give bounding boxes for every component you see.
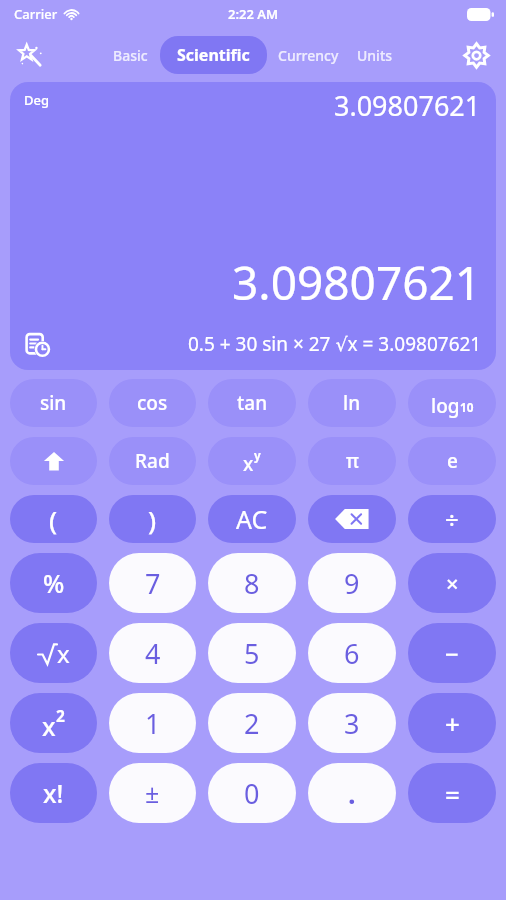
- button[interactable]: ±: [109, 763, 196, 823]
- staticText: 0: [244, 775, 260, 812]
- staticText: 6: [344, 635, 360, 672]
- button[interactable]: Basic: [105, 38, 156, 73]
- button[interactable]: 3: [308, 693, 396, 753]
- staticText: 7: [145, 565, 161, 602]
- button[interactable]: 0: [208, 763, 296, 823]
- staticText: ): [148, 502, 157, 537]
- button[interactable]: Settings: [454, 33, 498, 77]
- staticText: 2: [244, 705, 260, 742]
- button[interactable]: tan: [208, 379, 296, 427]
- button[interactable]: x: [10, 693, 97, 753]
- button[interactable]: .: [308, 763, 396, 823]
- staticText: ±: [145, 776, 160, 810]
- button[interactable]: ln: [308, 379, 396, 427]
- button[interactable]: ×: [408, 553, 496, 613]
- button[interactable]: π: [308, 437, 396, 485]
- staticText: %: [43, 566, 65, 600]
- staticText: x!: [43, 776, 64, 810]
- button[interactable]: sin: [10, 379, 97, 427]
- staticText: y: [254, 447, 261, 463]
- button[interactable]: History: [21, 328, 53, 360]
- staticText: (: [49, 502, 58, 537]
- button[interactable]: x!: [10, 763, 97, 823]
- staticText: 10: [460, 399, 474, 415]
- staticText: x: [243, 451, 254, 477]
- staticText: x: [42, 709, 56, 743]
- button[interactable]: 6: [308, 623, 396, 683]
- staticText: Carrier: [14, 5, 58, 23]
- staticText: 5: [244, 635, 260, 672]
- staticText: cos: [137, 390, 168, 416]
- staticText: Units: [357, 46, 393, 65]
- button[interactable]: ÷: [408, 495, 496, 543]
- button[interactable]: Shift: [10, 437, 97, 485]
- staticText: 9: [344, 565, 360, 602]
- button[interactable]: 5: [208, 623, 296, 683]
- button[interactable]: Magic: [8, 33, 52, 77]
- staticText: 3.09807621: [232, 251, 482, 314]
- staticText: 3: [344, 705, 360, 742]
- button[interactable]: 1: [109, 693, 196, 753]
- button[interactable]: Rad: [109, 437, 196, 485]
- button[interactable]: 4: [109, 623, 196, 683]
- staticText: sin: [40, 390, 67, 416]
- staticText: ln: [343, 390, 361, 416]
- button[interactable]: %: [10, 553, 97, 613]
- staticText: 8: [244, 565, 260, 602]
- button[interactable]: x: [208, 437, 296, 485]
- staticText: x: [57, 637, 70, 670]
- button[interactable]: Square root: [10, 623, 97, 683]
- staticText: ÷: [445, 503, 459, 536]
- staticText: ×: [446, 568, 459, 598]
- staticText: log: [431, 393, 460, 419]
- button[interactable]: Currency: [271, 38, 346, 73]
- button[interactable]: =: [408, 763, 496, 823]
- staticText: Basic: [113, 46, 148, 65]
- button[interactable]: Units: [350, 38, 400, 73]
- staticText: .: [348, 775, 356, 812]
- staticText: tan: [237, 390, 268, 416]
- button[interactable]: (: [10, 495, 97, 543]
- button[interactable]: Scientific: [160, 36, 267, 74]
- staticText: 2: [56, 705, 65, 726]
- button[interactable]: AC: [208, 495, 296, 543]
- staticText: π: [346, 448, 359, 474]
- staticText: Deg: [24, 91, 50, 109]
- button[interactable]: cos: [109, 379, 196, 427]
- staticText: 4: [145, 635, 161, 672]
- button[interactable]: 8: [208, 553, 296, 613]
- staticText: 3.09807621: [334, 87, 481, 124]
- staticText: 0.5 + 30 sin × 27 √x = 3.09807621: [188, 331, 482, 357]
- button[interactable]: ): [109, 495, 196, 543]
- button[interactable]: log: [408, 379, 496, 427]
- staticText: Currency: [278, 46, 339, 65]
- staticText: +: [445, 706, 460, 741]
- button[interactable]: 2: [208, 693, 296, 753]
- staticText: AC: [236, 502, 268, 536]
- staticText: 1: [145, 705, 161, 742]
- staticText: Scientific: [177, 44, 250, 66]
- button[interactable]: +: [408, 693, 496, 753]
- button[interactable]: 9: [308, 553, 396, 613]
- staticText: −: [445, 637, 459, 670]
- button[interactable]: −: [408, 623, 496, 683]
- staticText: 2:22 AM: [228, 5, 279, 23]
- button[interactable]: 7: [109, 553, 196, 613]
- button[interactable]: e: [408, 437, 496, 485]
- staticText: =: [445, 776, 460, 811]
- staticText: e: [447, 448, 458, 474]
- staticText: Rad: [135, 448, 170, 474]
- button[interactable]: Delete: [308, 495, 396, 543]
